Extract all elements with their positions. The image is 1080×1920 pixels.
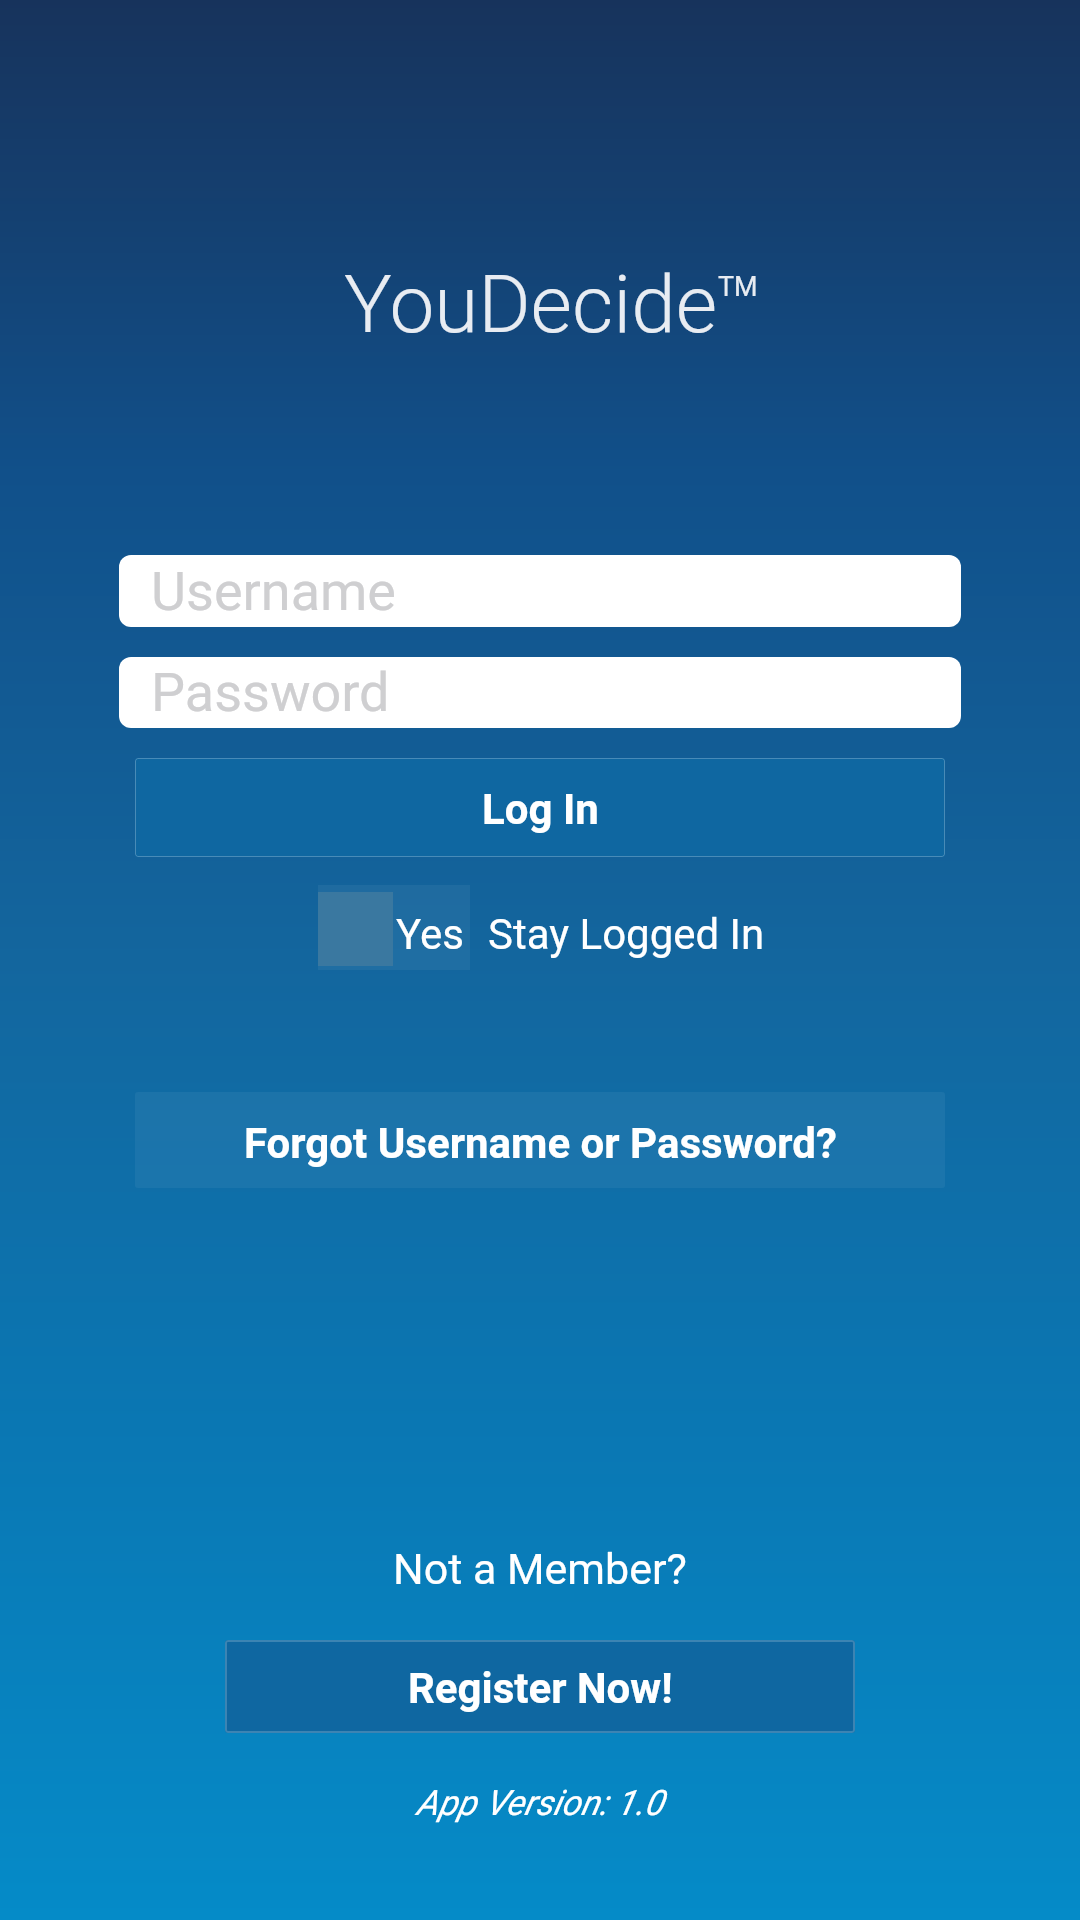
button[interactable]: Forgot Username or Password?: [135, 1092, 945, 1188]
staticText: Stay Logged In: [488, 910, 765, 959]
staticText: Log In: [482, 785, 599, 834]
button[interactable]: Log In: [135, 758, 945, 857]
staticText: Forgot Username or Password?: [244, 1119, 837, 1168]
staticText: Register Now!: [408, 1664, 673, 1713]
staticText: Not a Member?: [393, 1544, 687, 1594]
staticText: Password: [151, 661, 390, 724]
staticText: Yes: [396, 910, 464, 959]
button[interactable]: Register Now!: [225, 1640, 855, 1733]
staticText: App Version: 1.0: [416, 1783, 664, 1824]
staticText: TM: [718, 271, 758, 303]
button[interactable]: Username: [119, 555, 961, 627]
button[interactable]: Password: [119, 657, 961, 728]
staticText: Username: [151, 560, 397, 623]
staticText: YouDecide: [344, 258, 718, 352]
button[interactable]: [318, 885, 470, 970]
